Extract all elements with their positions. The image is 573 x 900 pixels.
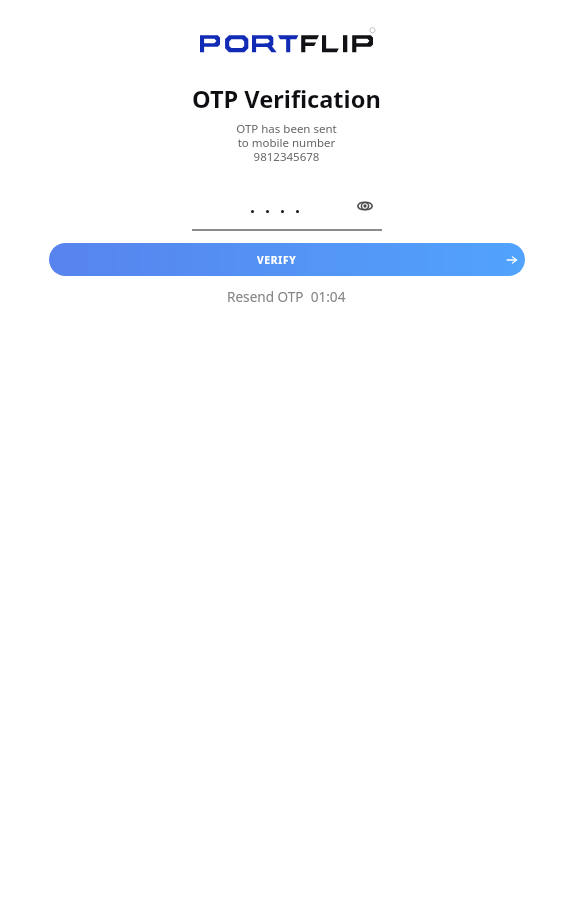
staticText: Resend OTP 01:04	[227, 287, 346, 306]
staticText: VERIFY	[257, 253, 297, 267]
button[interactable]: Show OTP	[353, 194, 377, 218]
button[interactable]: Resend OTP 01:04	[217, 281, 356, 312]
staticText: OTP Verification	[192, 83, 381, 114]
button[interactable]: VERIFY	[49, 243, 525, 276]
staticText: OTP has been sent to mobile number 98123…	[236, 121, 337, 164]
